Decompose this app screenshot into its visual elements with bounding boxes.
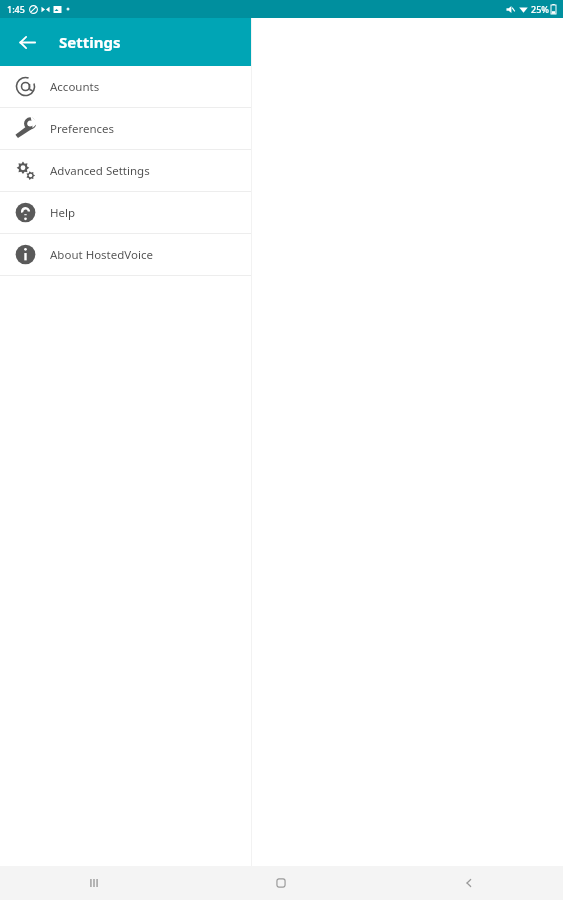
staticText: Help <box>50 205 76 221</box>
button[interactable]: Back <box>10 25 44 59</box>
button[interactable]: Preferences <box>0 108 251 149</box>
button[interactable]: Home <box>187 866 375 900</box>
button[interactable]: Recents <box>0 866 187 900</box>
staticText: 1:45 <box>7 3 25 15</box>
staticText: Advanced Settings <box>50 163 150 179</box>
button[interactable]: About HostedVoice <box>0 234 251 275</box>
button[interactable]: Help <box>0 192 251 233</box>
staticText: Accounts <box>50 79 100 95</box>
button[interactable]: Back <box>375 866 563 900</box>
button[interactable]: Advanced Settings <box>0 150 251 191</box>
button[interactable]: Accounts <box>0 66 251 107</box>
staticText: Settings <box>59 32 121 52</box>
staticText: 25% <box>531 3 549 15</box>
staticText: About HostedVoice <box>50 247 153 263</box>
staticText: Preferences <box>50 121 115 137</box>
